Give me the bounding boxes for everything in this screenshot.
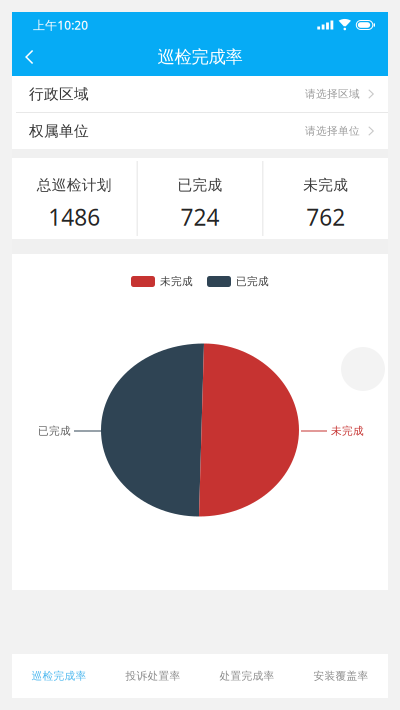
button[interactable]: Back [12,38,50,76]
staticText: 请选择区域 [305,87,360,100]
staticText: 安装覆盖率 [313,669,368,682]
staticText: 总巡检计划 [37,176,112,194]
button[interactable]: 行政区域 [12,76,388,112]
button[interactable]: 权属单位 [12,113,388,149]
button[interactable]: 安装覆盖率 [294,654,388,698]
staticText: 已完成 [38,424,71,437]
staticText: 上午10:20 [33,17,88,33]
staticText: 762 [306,202,345,232]
staticText: 行政区域 [29,85,89,103]
staticText: 724 [180,202,219,232]
staticText: 已完成 [236,275,269,288]
staticText: 投诉处置率 [125,669,180,682]
staticText: 已完成 [177,176,222,194]
button[interactable]: 投诉处置率 [106,654,200,698]
staticText: 1486 [48,202,100,232]
staticText: 未完成 [331,424,364,437]
button[interactable]: 巡检完成率 [12,654,106,698]
staticText: 权属单位 [29,122,89,140]
button[interactable]: 处置完成率 [200,654,294,698]
staticText: 未完成 [303,176,348,194]
staticText: 巡检完成率 [157,46,242,68]
staticText: 请选择单位 [305,124,360,137]
staticText: 处置完成率 [219,669,274,682]
staticText: 未完成 [160,275,193,288]
staticText: 巡检完成率 [31,669,86,682]
